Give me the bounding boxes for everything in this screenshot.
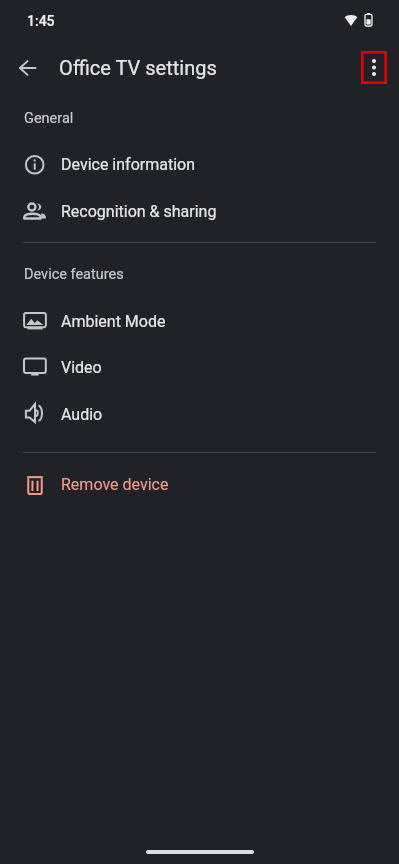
staticText: Audio bbox=[61, 405, 103, 424]
button[interactable]: Remove device bbox=[0, 461, 399, 507]
staticText: Office TV settings bbox=[59, 56, 217, 79]
button[interactable]: Audio bbox=[0, 391, 399, 437]
button[interactable]: Back bbox=[5, 45, 50, 90]
button[interactable]: Device information bbox=[0, 141, 399, 187]
staticText: Ambient Mode bbox=[61, 312, 166, 331]
staticText: Device information bbox=[61, 155, 196, 174]
staticText: 1:45 bbox=[27, 13, 55, 29]
staticText: Video bbox=[61, 358, 102, 377]
staticText: General bbox=[24, 110, 74, 127]
button[interactable]: More options bbox=[361, 51, 387, 84]
button[interactable]: Ambient Mode bbox=[0, 298, 399, 344]
staticText: Recognition & sharing bbox=[61, 202, 217, 221]
button[interactable]: Video bbox=[0, 344, 399, 390]
staticText: Remove device bbox=[61, 475, 169, 494]
staticText: Device features bbox=[24, 266, 124, 283]
button[interactable]: Recognition & sharing bbox=[0, 188, 399, 234]
